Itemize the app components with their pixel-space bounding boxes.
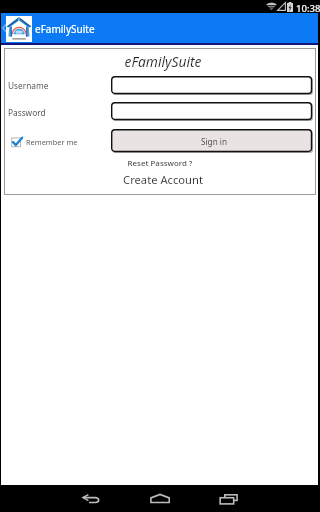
button[interactable] [111,102,313,121]
button[interactable]: Create Account [7,172,319,187]
staticText: Sign in [201,136,228,147]
button[interactable]: Remember me [11,135,78,149]
button[interactable] [111,129,313,153]
staticText: eFamilySuite [7,52,319,71]
staticText: 10:38 [296,2,320,15]
staticText: Password [8,107,46,118]
button[interactable]: Back [78,492,104,506]
staticText: eFamilySuite [35,22,95,36]
button[interactable]: Navigate up [1,21,8,35]
button[interactable]: Reset Password ? [4,158,316,169]
button[interactable]: Home [147,492,173,506]
button[interactable]: Recent apps [216,492,242,506]
button[interactable]: Sign in [111,129,313,153]
staticText: Username [8,80,49,91]
staticText: Remember me [26,137,78,147]
button[interactable] [111,76,313,95]
